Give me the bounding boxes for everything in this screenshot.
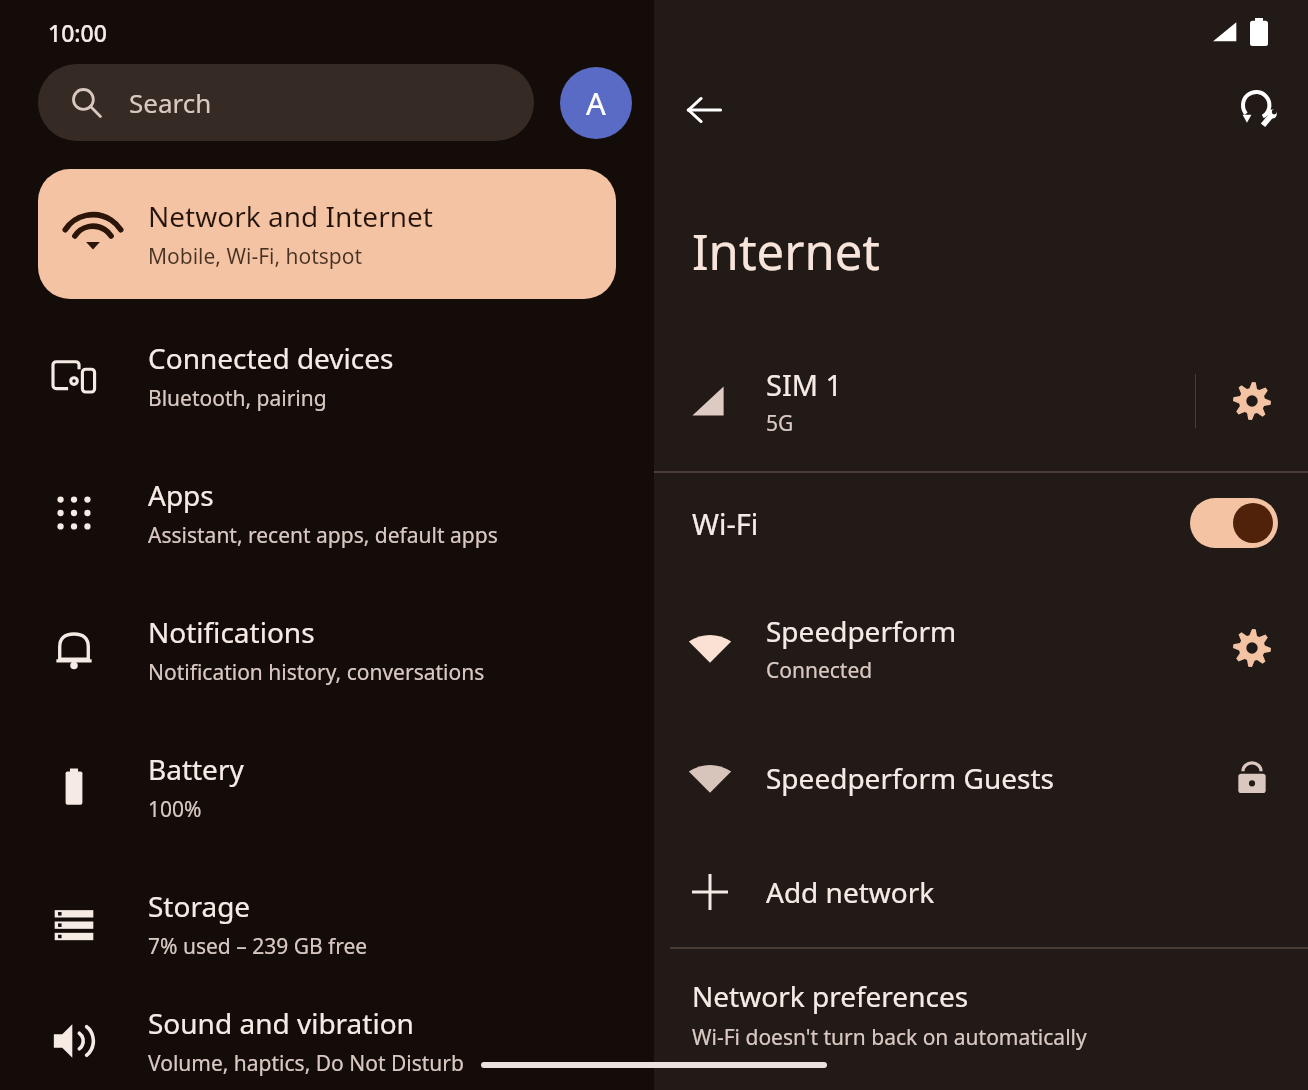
staticText: 10:00 bbox=[48, 17, 107, 48]
staticText: Volume, haptics, Do Not Disturb bbox=[148, 1049, 464, 1078]
button[interactable]: Search bbox=[38, 64, 534, 141]
button[interactable]: Wi-Fi bbox=[654, 473, 1308, 573]
staticText: Add network bbox=[766, 873, 935, 911]
staticText: Connected bbox=[766, 656, 873, 685]
button[interactable]: SIM settings bbox=[1196, 349, 1308, 453]
button[interactable]: Speedperform options bbox=[1196, 583, 1308, 713]
staticText: Sound and vibration bbox=[148, 1004, 414, 1042]
button[interactable]: Network and Internet bbox=[38, 169, 616, 299]
staticText: A bbox=[586, 82, 606, 124]
button[interactable]: Add network bbox=[654, 843, 1308, 941]
staticText: 7% used – 239 GB free bbox=[148, 932, 368, 961]
staticText: Speedperform Guests bbox=[766, 759, 1054, 797]
staticText: Notification history, conversations bbox=[148, 658, 485, 687]
button[interactable]: Troubleshoot bbox=[1230, 81, 1288, 139]
button[interactable]: Back bbox=[676, 82, 732, 138]
button[interactable]: Sound and vibration bbox=[0, 992, 654, 1090]
staticText: 5G bbox=[766, 409, 794, 438]
staticText: 100% bbox=[148, 795, 202, 824]
button[interactable]: Speedperform Guests options bbox=[1196, 713, 1308, 843]
staticText: Wi-Fi doesn't turn back on automatically bbox=[692, 1023, 1087, 1052]
button[interactable]: SIM 1 bbox=[654, 349, 1308, 453]
staticText: Network and Internet bbox=[148, 197, 433, 235]
button[interactable]: Apps bbox=[0, 444, 654, 581]
staticText: Connected devices bbox=[148, 339, 394, 377]
staticText: Internet bbox=[692, 218, 881, 285]
staticText: Bluetooth, pairing bbox=[148, 384, 327, 413]
staticText: Search bbox=[129, 85, 212, 120]
staticText: Assistant, recent apps, default apps bbox=[148, 521, 498, 550]
button[interactable]: Storage bbox=[0, 855, 654, 992]
staticText: Speedperform bbox=[766, 612, 957, 650]
button[interactable]: Notifications bbox=[0, 581, 654, 718]
button[interactable]: Network preferences bbox=[654, 949, 1308, 1066]
staticText: Notifications bbox=[148, 613, 315, 651]
staticText: Storage bbox=[148, 887, 251, 925]
button[interactable]: Connected devices bbox=[0, 307, 654, 444]
button[interactable]: Speedperform bbox=[654, 583, 1308, 713]
staticText: Mobile, Wi-Fi, hotspot bbox=[148, 242, 363, 271]
staticText: Apps bbox=[148, 476, 214, 514]
button[interactable]: Speedperform Guests bbox=[654, 713, 1308, 843]
staticText: SIM 1 bbox=[766, 365, 843, 404]
staticText: Battery bbox=[148, 750, 244, 788]
staticText: Network preferences bbox=[692, 977, 969, 1015]
button[interactable]: Account bbox=[560, 67, 632, 139]
button[interactable]: Battery bbox=[0, 718, 654, 855]
staticText: Wi-Fi bbox=[692, 504, 1190, 543]
